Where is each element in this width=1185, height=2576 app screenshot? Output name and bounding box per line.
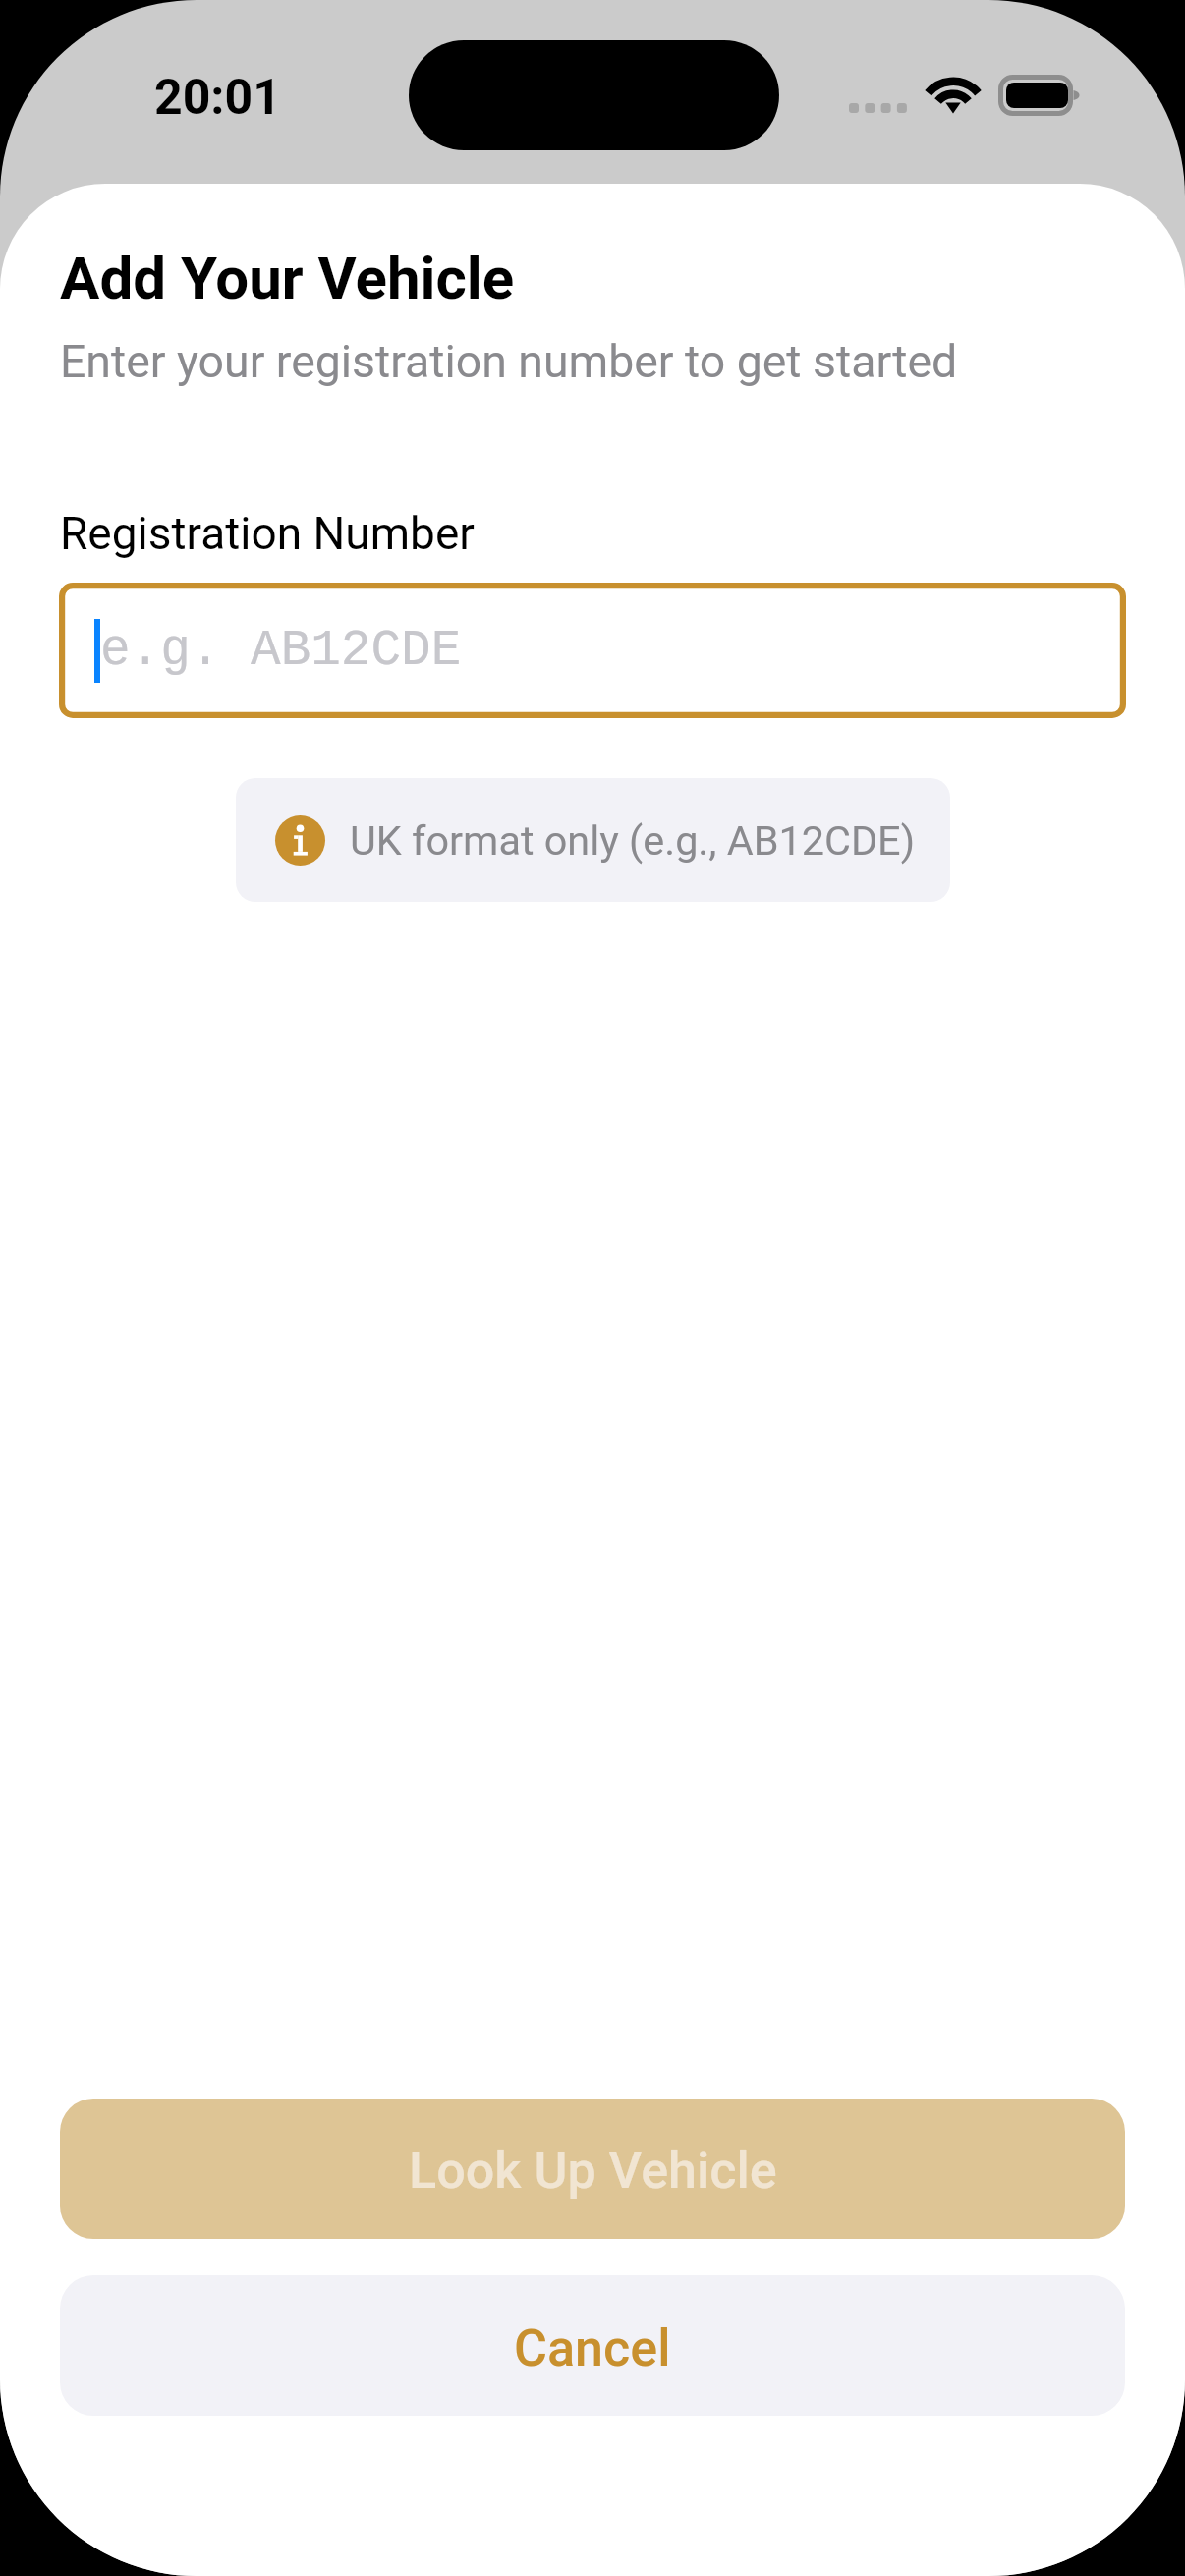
staticText: UK format only (e.g., AB12CDE) xyxy=(350,817,916,866)
other: Information xyxy=(275,815,325,866)
staticText: Cancel xyxy=(514,2319,671,2379)
button[interactable]: Look Up Vehicle xyxy=(60,2099,1125,2239)
button[interactable]: e.g. AB12CDE xyxy=(59,583,1126,718)
button[interactable]: Cancel xyxy=(60,2275,1125,2416)
staticText: Add Your Vehicle xyxy=(60,244,515,312)
staticText: e.g. AB12CDE xyxy=(100,623,462,680)
staticText: Look Up Vehicle xyxy=(409,2141,777,2201)
staticText: Enter your registration number to get st… xyxy=(60,335,958,388)
staticText: Registration Number xyxy=(60,507,475,560)
staticText: 20:01 xyxy=(154,69,281,127)
